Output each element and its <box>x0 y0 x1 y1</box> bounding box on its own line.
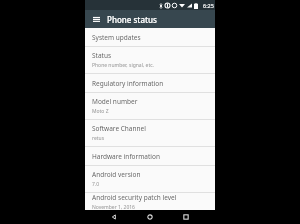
button[interactable]: Model number <box>85 93 215 119</box>
staticText: Model number <box>92 97 138 106</box>
button[interactable]: Regulatory information <box>85 74 215 92</box>
button[interactable]: Software Channel <box>85 120 215 146</box>
staticText: Android security patch level <box>92 193 177 202</box>
button[interactable]: Recent apps <box>179 210 193 224</box>
staticText: 7.0 <box>92 181 100 188</box>
staticText: Status <box>92 51 112 60</box>
button[interactable]: Android security patch level <box>85 193 215 210</box>
button[interactable]: Android version <box>85 166 215 192</box>
staticText: Hardware information <box>92 152 160 161</box>
button[interactable]: System updates <box>85 28 215 46</box>
staticText: Phone number, signal, etc. <box>92 62 154 69</box>
button[interactable]: Status <box>85 47 215 73</box>
staticText: Android version <box>92 170 141 179</box>
staticText: System updates <box>92 33 141 42</box>
staticText: Moto Z <box>92 108 109 115</box>
button[interactable]: Back <box>107 210 121 224</box>
staticText: retus <box>92 135 105 142</box>
staticText: 6:25 <box>203 2 214 9</box>
button[interactable]: Hardware information <box>85 147 215 165</box>
staticText: November 1, 2016 <box>92 204 135 210</box>
button[interactable]: Open navigation menu <box>90 13 102 25</box>
staticText: Software Channel <box>92 124 146 133</box>
staticText: Regulatory information <box>92 79 164 88</box>
button[interactable]: Home <box>143 210 157 224</box>
staticText: Phone status <box>107 14 157 25</box>
